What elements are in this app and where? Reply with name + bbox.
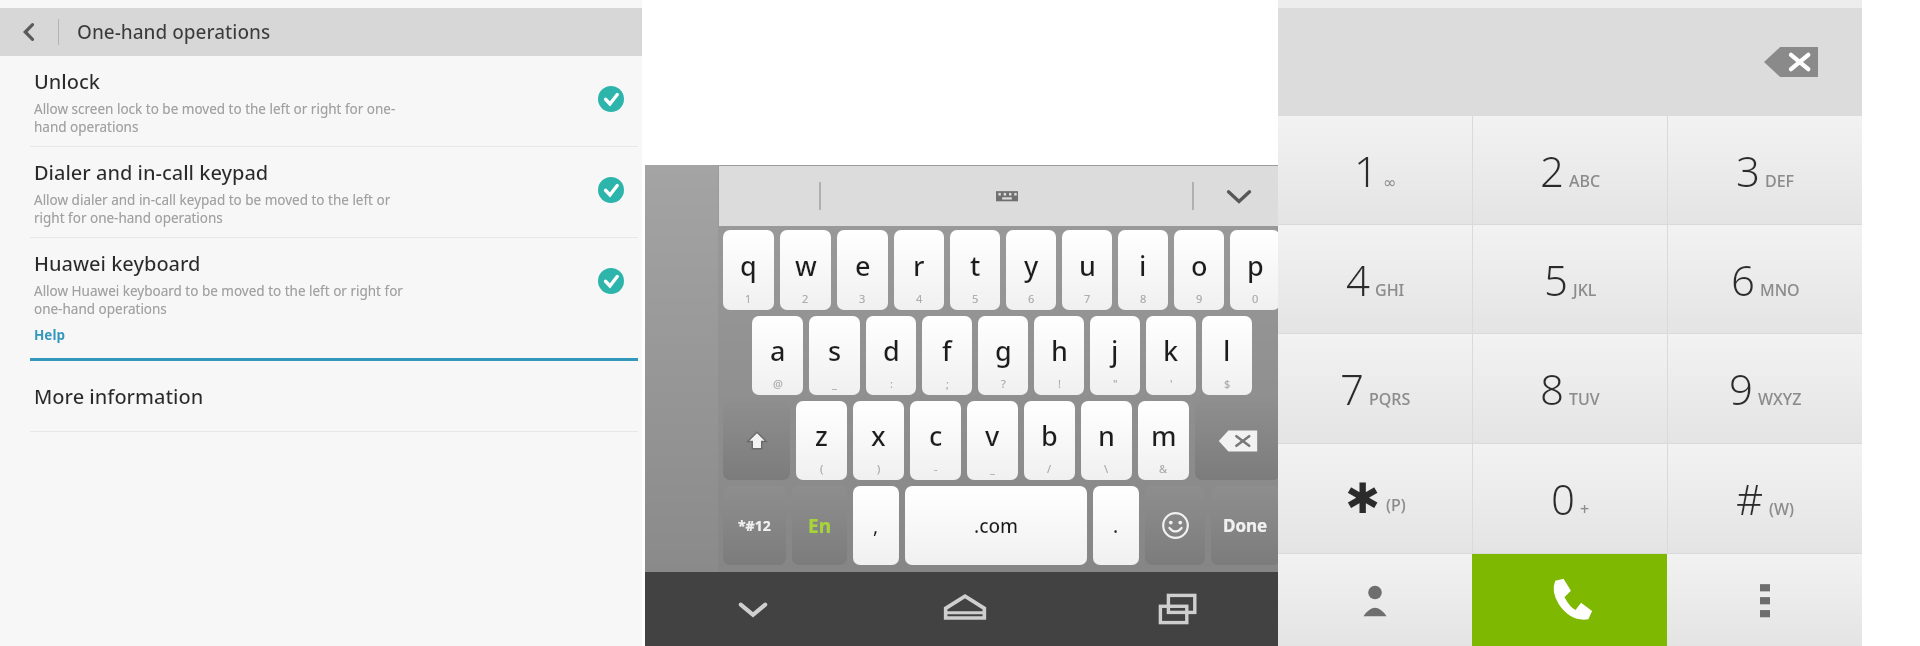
button[interactable]: s bbox=[809, 316, 860, 395]
button[interactable]: Help bbox=[34, 326, 65, 344]
button[interactable]: l bbox=[1202, 316, 1252, 395]
button[interactable]: Home bbox=[860, 572, 1070, 646]
staticText: / bbox=[1047, 461, 1052, 476]
staticText: # bbox=[1736, 470, 1764, 527]
button[interactable]: 3 bbox=[1668, 116, 1862, 224]
button[interactable]: 0 bbox=[1473, 444, 1667, 553]
staticText: 4 bbox=[916, 291, 923, 306]
staticText: r bbox=[913, 247, 925, 284]
staticText: . bbox=[1113, 513, 1119, 539]
button[interactable]: . bbox=[1093, 486, 1139, 565]
button[interactable]: Hide keyboard bbox=[1194, 166, 1284, 226]
button[interactable]: p bbox=[1230, 230, 1280, 310]
button[interactable]: 7 bbox=[1278, 334, 1472, 443]
staticText: 2 bbox=[802, 291, 809, 306]
button[interactable]: Unlock bbox=[0, 56, 642, 146]
button[interactable]: o bbox=[1174, 230, 1224, 310]
staticText: x bbox=[871, 417, 886, 454]
button[interactable]: u bbox=[1062, 230, 1112, 310]
staticText: WXYZ bbox=[1758, 388, 1802, 410]
button[interactable]: .com bbox=[905, 486, 1087, 565]
button[interactable]: Enabled bbox=[596, 175, 626, 205]
button[interactable]: 5 bbox=[1473, 225, 1667, 333]
button[interactable]: w bbox=[780, 230, 831, 310]
staticText: JKL bbox=[1573, 279, 1597, 301]
button[interactable]: Back bbox=[645, 572, 860, 646]
button[interactable]: Call bbox=[1472, 554, 1667, 646]
button[interactable]: g bbox=[978, 316, 1028, 395]
button[interactable]: Done bbox=[1211, 486, 1280, 565]
staticText: , bbox=[873, 513, 879, 539]
button[interactable]: 1 bbox=[1278, 116, 1472, 224]
staticText: 1 bbox=[745, 291, 752, 306]
button[interactable]: Delete bbox=[1195, 401, 1280, 480]
button[interactable]: d bbox=[866, 316, 916, 395]
button[interactable]: Dialer and in-call keypad bbox=[0, 147, 642, 237]
staticText: k bbox=[1163, 332, 1179, 369]
button[interactable]: Symbols bbox=[723, 486, 786, 565]
button[interactable]: a bbox=[752, 316, 803, 395]
button[interactable]: 8 bbox=[1473, 334, 1667, 443]
button[interactable]: , bbox=[853, 486, 899, 565]
button[interactable]: n bbox=[1081, 401, 1132, 480]
staticText: i bbox=[1139, 247, 1147, 284]
button[interactable]: Enabled bbox=[596, 84, 626, 114]
staticText: b bbox=[1041, 417, 1058, 454]
button[interactable]: z bbox=[796, 401, 847, 480]
button[interactable]: t bbox=[950, 230, 1000, 310]
button[interactable]: x bbox=[853, 401, 904, 480]
button[interactable]: q bbox=[723, 230, 774, 310]
button[interactable]: # bbox=[1668, 444, 1862, 553]
staticText: o bbox=[1191, 247, 1208, 284]
button[interactable]: More options bbox=[1667, 554, 1862, 646]
button[interactable]: Back bbox=[0, 8, 58, 56]
button[interactable]: More information bbox=[0, 361, 642, 431]
button[interactable]: e bbox=[837, 230, 888, 310]
button[interactable]: r bbox=[894, 230, 944, 310]
button[interactable]: Huawei keyboard bbox=[0, 238, 642, 358]
staticText: ∞ bbox=[1383, 173, 1397, 192]
button[interactable]: m bbox=[1138, 401, 1189, 480]
button[interactable]: ✱ bbox=[1278, 444, 1472, 553]
staticText: n bbox=[1098, 417, 1115, 454]
staticText: 3 bbox=[859, 291, 866, 306]
button[interactable]: b bbox=[1024, 401, 1075, 480]
button[interactable]: Shift bbox=[723, 401, 790, 480]
button[interactable]: j bbox=[1090, 316, 1140, 395]
button[interactable]: Back bbox=[0, 8, 642, 56]
button[interactable]: Recent apps bbox=[1070, 572, 1285, 646]
staticText: + bbox=[1580, 498, 1590, 520]
button[interactable]: 9 bbox=[1668, 334, 1862, 443]
button[interactable]: y bbox=[1006, 230, 1056, 310]
button[interactable]: k bbox=[1146, 316, 1196, 395]
staticText: Unlock bbox=[34, 68, 100, 95]
staticText: Allow Huawei keyboard to be moved to the… bbox=[34, 282, 403, 318]
staticText: 8 bbox=[1540, 360, 1564, 417]
button[interactable]: f bbox=[922, 316, 972, 395]
staticText: 7 bbox=[1084, 291, 1091, 306]
button[interactable]: Language bbox=[792, 486, 847, 565]
button[interactable]: Delete bbox=[1764, 44, 1818, 80]
button[interactable]: 6 bbox=[1668, 225, 1862, 333]
staticText: Allow dialer and in-call keypad to be mo… bbox=[34, 191, 391, 227]
button[interactable]: i bbox=[1118, 230, 1168, 310]
staticText: m bbox=[1151, 417, 1177, 454]
staticText: 9 bbox=[1196, 291, 1203, 306]
staticText: 5 bbox=[1544, 251, 1568, 308]
button[interactable]: Contacts bbox=[1278, 554, 1472, 646]
staticText: v bbox=[985, 417, 1000, 454]
staticText: : bbox=[890, 376, 893, 391]
button[interactable] bbox=[645, 165, 718, 572]
button[interactable]: 4 bbox=[1278, 225, 1472, 333]
button[interactable]: Emoji bbox=[1145, 486, 1205, 565]
button[interactable]: Enabled bbox=[596, 266, 626, 296]
button[interactable]: h bbox=[1034, 316, 1084, 395]
staticText: $ bbox=[1224, 376, 1231, 391]
staticText: p bbox=[1247, 247, 1264, 284]
button[interactable]: c bbox=[910, 401, 961, 480]
staticText: Help bbox=[34, 326, 65, 344]
button[interactable]: 2 bbox=[1473, 116, 1667, 224]
staticText: _ bbox=[990, 461, 995, 476]
button[interactable]: v bbox=[967, 401, 1018, 480]
staticText: t bbox=[970, 247, 981, 284]
